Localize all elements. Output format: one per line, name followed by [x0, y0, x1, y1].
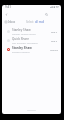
- button[interactable]: Back: [3, 11, 9, 17]
- staticText: 9:41: [5, 5, 11, 9]
- staticText: File transfer complete: [12, 41, 38, 44]
- staticText: Budget update: [12, 50, 30, 53]
- staticText: Sep 2: [51, 39, 58, 42]
- button[interactable]: Stanley Shaw: [2, 45, 61, 54]
- staticText: Select: [26, 20, 34, 24]
- staticText: all mail: [35, 20, 45, 24]
- staticText: Stanley Shaw: [12, 46, 32, 50]
- button[interactable]: Search: [43, 11, 49, 17]
- button[interactable]: Stanley Shaw: [2, 27, 61, 36]
- staticText: Quick Share: [12, 37, 29, 41]
- staticText: Design review notes: [12, 32, 36, 35]
- staticText: Inbox: [8, 20, 16, 24]
- staticText: Sep 4: [51, 30, 58, 33]
- button[interactable]: Inbox: [2, 20, 61, 24]
- staticText: Aug 29: [50, 48, 58, 51]
- button[interactable]: Quick Share: [2, 36, 61, 45]
- staticText: Stanley Shaw: [12, 28, 31, 32]
